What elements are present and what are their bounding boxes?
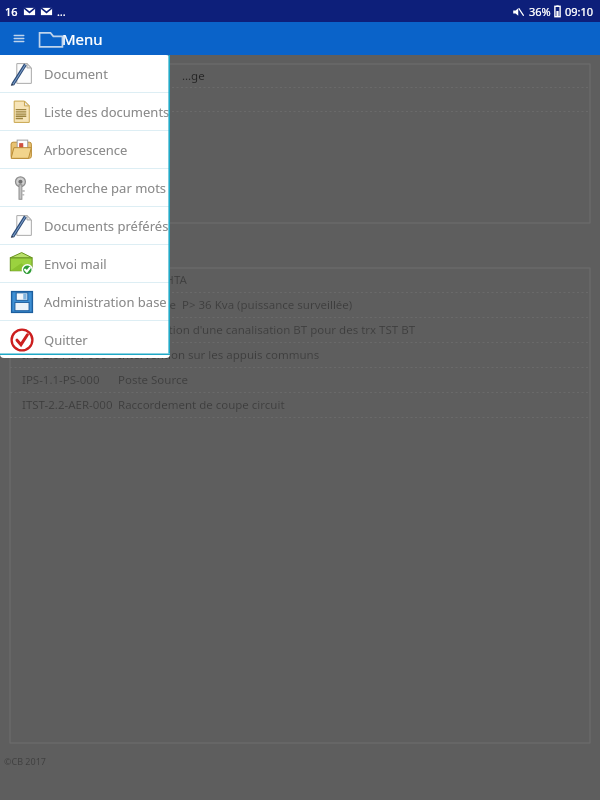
button[interactable]: IPS-?.?-???-??? <box>10 293 590 317</box>
staticText: Envoi mail <box>44 255 107 273</box>
button[interactable]: …ge <box>10 64 590 87</box>
staticText: 16 <box>5 4 18 19</box>
staticText: Raccordement de coupe circuit <box>118 397 285 413</box>
staticText: ©CB 2017 <box>4 755 46 767</box>
staticText: Administration base <box>44 293 167 311</box>
staticText: …ge <box>182 68 205 84</box>
button[interactable]: Open navigation menu <box>0 22 38 55</box>
button[interactable]: Documents préférés <box>0 207 170 244</box>
staticText: Documents préférés <box>44 217 169 235</box>
staticText: Menu <box>62 29 103 49</box>
button[interactable]: Recherche par mots c… <box>0 169 170 206</box>
button[interactable]: IPS-1.1-PS-000 <box>10 368 590 392</box>
staticText: 36% <box>529 4 551 19</box>
staticText: …omptage P> 36 Kva (puissance surveillée… <box>118 297 353 313</box>
staticText: Quitter <box>44 331 88 349</box>
button[interactable]: Envoi mail <box>0 245 170 282</box>
button[interactable] <box>10 88 590 111</box>
staticText: Arborescence <box>44 141 128 159</box>
staticText: Identification d'une canalisation BT pou… <box>118 322 416 338</box>
button[interactable]: Arborescence <box>0 131 170 168</box>
button[interactable]: Liste des documents <box>0 93 170 130</box>
staticText: … <box>57 4 66 19</box>
button[interactable]: IPS-9.3.2-SOU-303 <box>10 318 590 342</box>
staticText: Liste des documents <box>44 103 170 121</box>
button[interactable]: Administration base <box>0 283 170 320</box>
staticText: IPS-2.6-AER-000 <box>22 347 118 363</box>
staticText: ITST-2.2-AER-000 <box>22 397 118 413</box>
staticText: Intervention sur les appuis communs <box>118 347 320 363</box>
button[interactable]: Quitter <box>0 321 170 358</box>
staticText: Poste Source <box>118 372 188 388</box>
staticText: Recherche par mots c… <box>44 179 170 197</box>
staticText: IPS-9.3.2-SOU-303 <box>22 322 118 338</box>
staticText: …ux TST HTA <box>118 272 187 288</box>
button[interactable]: IPS-?.?-???-??? <box>10 268 590 292</box>
button[interactable]: Document <box>0 55 170 92</box>
staticText: IPS-1.1-PS-000 <box>22 372 118 388</box>
staticText: IPS-?.?-???-??? <box>22 272 118 288</box>
button[interactable]: ITST-2.2-AER-000 <box>10 393 590 417</box>
button[interactable] <box>10 112 590 223</box>
button[interactable]: IPS-2.6-AER-000 <box>10 343 590 367</box>
staticText: Document <box>44 65 108 83</box>
staticText: IPS-?.?-???-??? <box>22 297 118 313</box>
staticText: 09:10 <box>565 4 594 19</box>
